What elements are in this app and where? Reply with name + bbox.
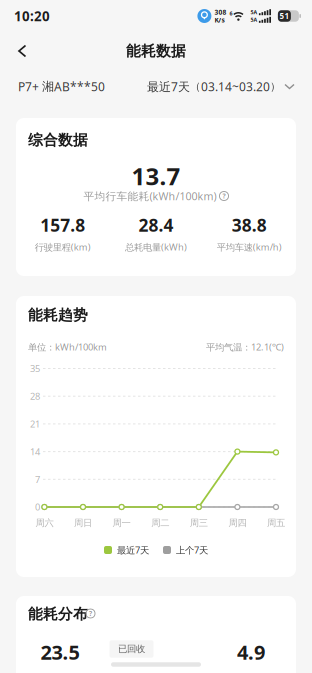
staticText: 能耗数据 <box>126 42 186 60</box>
staticText: ） <box>270 80 281 93</box>
staticText: 35 <box>30 362 40 375</box>
staticText: 平均车速(km/h) <box>217 241 282 253</box>
staticText: 周一 <box>113 517 131 529</box>
button[interactable]: 最近7天 <box>104 544 149 556</box>
staticText: 周三 <box>190 517 208 529</box>
staticText: 7 <box>35 473 40 485</box>
staticText: 最近7天 <box>117 544 149 556</box>
staticText: 行驶里程(km) <box>35 241 91 253</box>
staticText: 周四 <box>228 517 246 529</box>
staticText: 10:20 <box>14 7 50 25</box>
staticText: 周日 <box>74 517 92 529</box>
staticText: 4.9 <box>237 639 265 665</box>
staticText: 平均行车能耗(kWh/100km) <box>83 189 216 203</box>
staticText: 已回收 <box>118 643 145 655</box>
staticText: 21 <box>30 418 40 430</box>
staticText: （ <box>190 80 201 93</box>
staticText: 综合数据 <box>28 131 88 149</box>
button[interactable]: 返回 <box>0 32 28 65</box>
staticText: 最近7天 <box>147 78 190 94</box>
staticText: 28.4 <box>138 213 173 236</box>
button[interactable]: 能耗分布说明 <box>86 609 95 618</box>
staticText: 能耗趋势 <box>28 306 88 324</box>
staticText: 28 <box>30 390 40 402</box>
staticText: 周五 <box>267 517 285 529</box>
staticText: 38.8 <box>232 213 267 236</box>
staticText: P7+ <box>18 78 42 94</box>
staticText: 14 <box>30 445 40 458</box>
staticText: 308 <box>214 8 226 16</box>
staticText: 51 <box>279 11 289 21</box>
staticText: 5A <box>250 9 257 16</box>
staticText: 周二 <box>151 517 169 529</box>
staticText: 总耗电量(kWh) <box>125 241 187 253</box>
staticText: 23.5 <box>40 639 79 665</box>
staticText: 单位：kWh/100km <box>28 341 107 353</box>
button[interactable]: 平均行车能耗说明 <box>219 191 228 200</box>
staticText: ? <box>89 609 92 618</box>
staticText: 上个7天 <box>176 544 208 556</box>
staticText: 13.7 <box>131 160 180 192</box>
staticText: K/s <box>214 15 224 24</box>
staticText: AB***50 <box>54 78 105 94</box>
staticText: ? <box>222 192 225 200</box>
staticText: 能耗分布 <box>28 605 88 623</box>
staticText: 6 <box>229 10 232 17</box>
staticText: 周六 <box>35 517 53 529</box>
button[interactable]: 上个7天 <box>163 544 208 556</box>
staticText: 5A <box>250 16 257 23</box>
staticText: 157.8 <box>40 213 85 236</box>
staticText: 0 <box>35 501 40 513</box>
button[interactable]: 最近7天 <box>147 78 295 94</box>
staticText: 03.14~03.20 <box>201 78 270 94</box>
staticText: 平均气温：12.1(℃) <box>206 341 284 353</box>
staticText: 湘 <box>42 79 54 94</box>
